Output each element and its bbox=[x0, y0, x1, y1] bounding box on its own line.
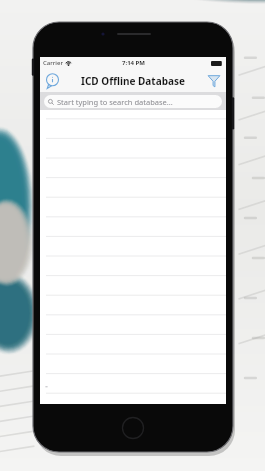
button[interactable]: Start typing to search database... bbox=[44, 95, 222, 108]
staticText: Start typing to search database... bbox=[57, 97, 173, 107]
button[interactable]: Information bbox=[43, 71, 62, 90]
button[interactable]: Filter bbox=[204, 71, 223, 90]
staticText: Carrier bbox=[43, 59, 63, 67]
staticText: ICD Offline Database bbox=[81, 74, 185, 88]
staticText: 7:14 PM bbox=[122, 59, 145, 67]
